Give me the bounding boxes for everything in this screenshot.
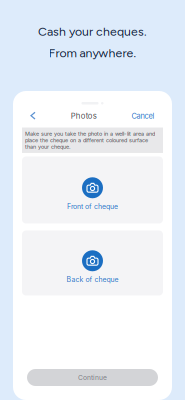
staticText: Photos <box>71 111 97 121</box>
staticText: Front of cheque <box>67 202 118 211</box>
staticText: Cancel <box>131 111 154 120</box>
button[interactable]: Back of cheque <box>22 230 163 295</box>
staticText: Cash your cheques. <box>38 24 147 39</box>
staticText: From anywhere. <box>48 46 136 60</box>
button[interactable]: Continue <box>27 369 158 386</box>
button[interactable]: Cancel <box>128 108 157 123</box>
staticText: Back of cheque <box>66 275 118 284</box>
staticText: Continue <box>78 373 107 382</box>
button[interactable]: Front of cheque <box>22 156 163 223</box>
staticText: Make sure you take the photo in a well-l… <box>25 130 155 150</box>
button[interactable]: Back <box>27 109 39 123</box>
